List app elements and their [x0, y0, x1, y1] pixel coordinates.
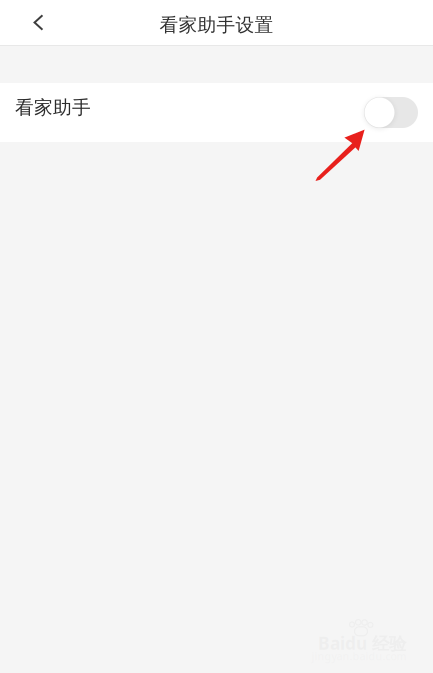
- button[interactable]: Back: [16, 0, 60, 45]
- staticText: 看家助手: [15, 96, 91, 119]
- button[interactable]: 看家助手: [0, 83, 433, 142]
- staticText: 看家助手设置: [159, 13, 273, 36]
